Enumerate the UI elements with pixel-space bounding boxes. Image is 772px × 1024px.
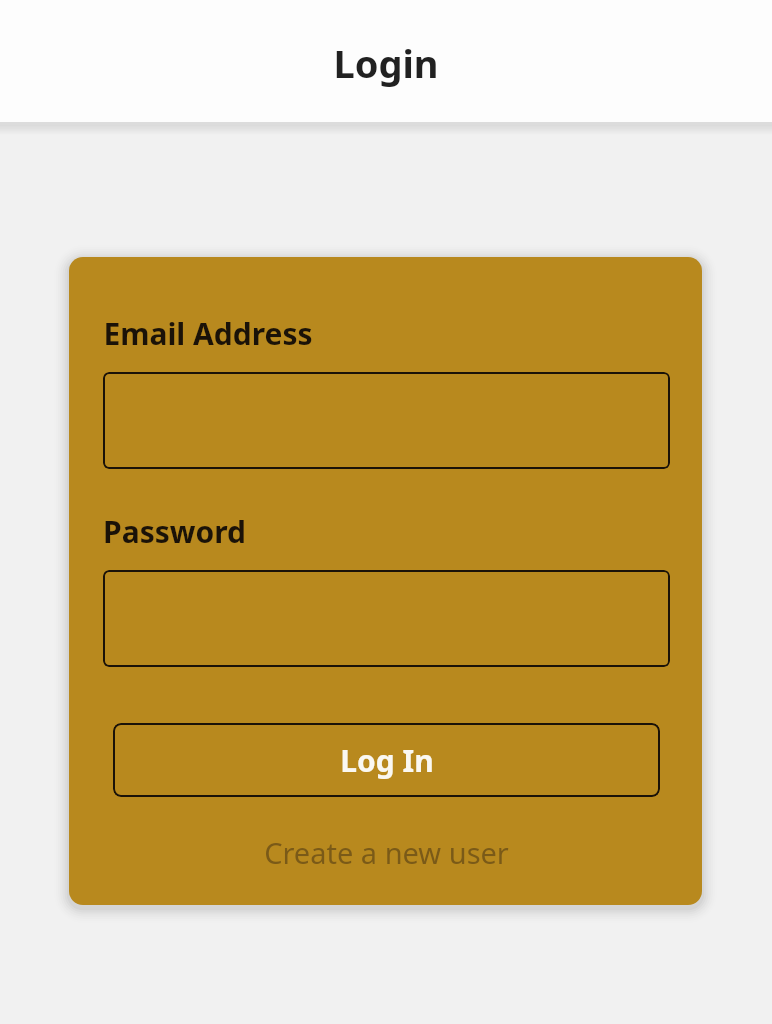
- button[interactable]: Text input field: [103, 570, 670, 667]
- button[interactable]: Log In: [113, 723, 660, 797]
- button[interactable]: Create a new user: [103, 825, 670, 879]
- staticText: Password: [103, 511, 246, 552]
- button[interactable]: Text input field: [103, 372, 670, 469]
- staticText: Create a new user: [264, 833, 509, 872]
- staticText: Log In: [340, 740, 434, 781]
- staticText: Email Address: [103, 313, 313, 354]
- staticText: Login: [333, 37, 439, 89]
